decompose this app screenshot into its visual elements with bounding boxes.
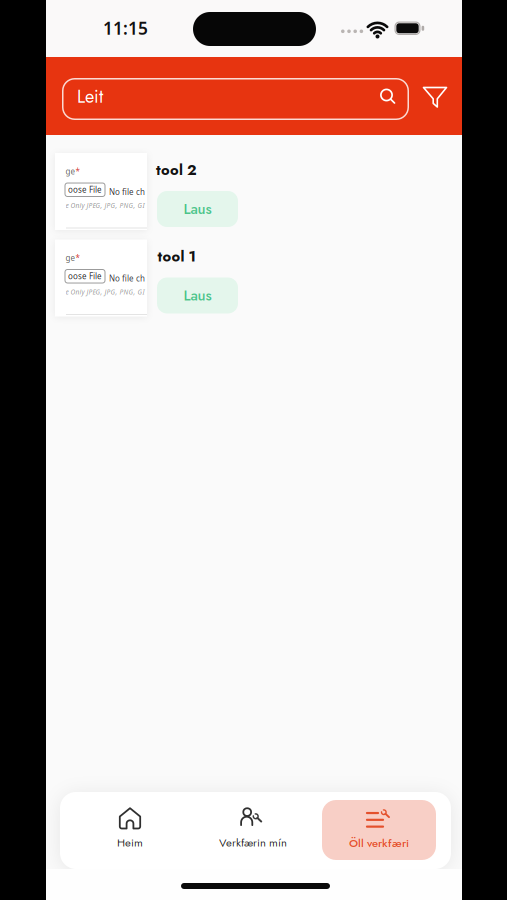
staticText: e Only JPEG, JPG, PNG, GI xyxy=(65,287,144,296)
staticText: Verkfærin mín xyxy=(219,834,287,851)
staticText: 11:15 xyxy=(103,16,148,39)
button[interactable]: Laus xyxy=(157,277,238,313)
button[interactable]: Verkfærin mín xyxy=(193,801,313,857)
staticText: Laus xyxy=(183,285,211,306)
button[interactable]: Laus xyxy=(157,191,238,227)
staticText: oose File xyxy=(68,184,102,195)
staticText: * xyxy=(75,252,79,263)
staticText: oose File xyxy=(68,271,102,281)
staticText: tool 2 xyxy=(156,159,197,181)
button[interactable]: Heim xyxy=(75,801,185,857)
staticText: Laus xyxy=(183,198,211,220)
button[interactable]: Leit xyxy=(62,78,409,120)
button[interactable]: ge xyxy=(46,153,462,230)
staticText: Öll verkfæri xyxy=(349,835,409,851)
staticText: Heim xyxy=(117,834,143,851)
staticText: e Only JPEG, JPG, PNG, GI xyxy=(65,201,144,210)
staticText: * xyxy=(75,166,79,177)
staticText: No file ch xyxy=(109,273,145,284)
staticText: tool 1 xyxy=(157,246,195,267)
staticText: No file ch xyxy=(109,186,145,197)
staticText: ge xyxy=(65,166,75,177)
button[interactable]: Öll verkfæri xyxy=(322,800,436,860)
button[interactable]: ge xyxy=(46,239,462,316)
staticText: Leit xyxy=(77,83,103,109)
staticText: ge xyxy=(65,252,75,263)
button[interactable] xyxy=(422,86,447,108)
